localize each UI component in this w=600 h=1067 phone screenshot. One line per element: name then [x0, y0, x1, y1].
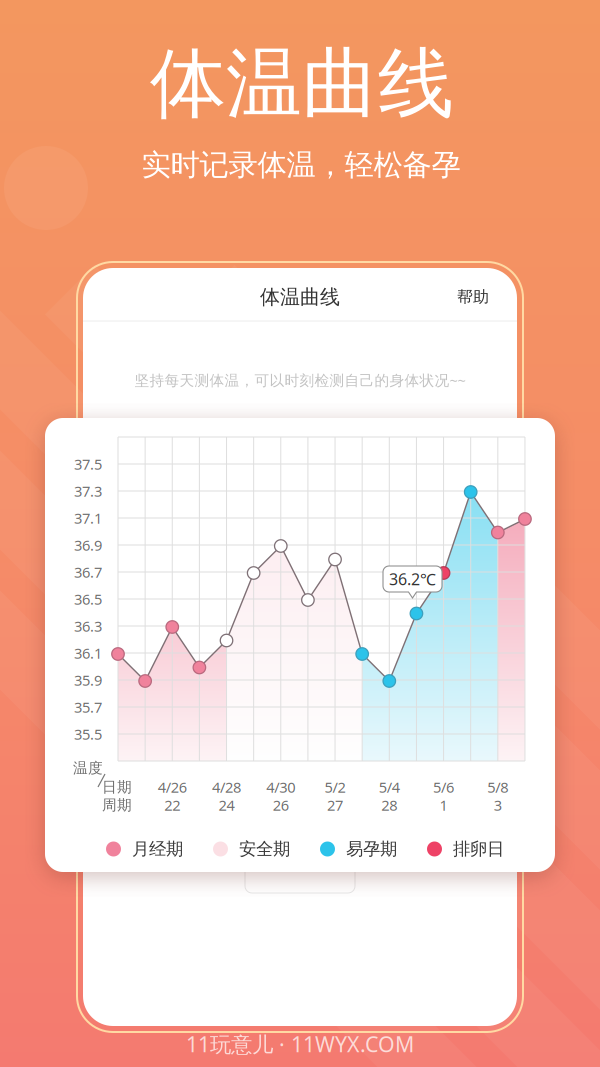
staticText: 37.1 — [74, 508, 102, 528]
staticText: 周期 — [102, 796, 132, 814]
staticText: 26 — [273, 795, 289, 815]
staticText: 22 — [164, 795, 180, 815]
staticText: 5/6 — [433, 777, 454, 797]
staticText: 温度 — [73, 759, 103, 777]
staticText: 排卵日 — [453, 838, 504, 860]
staticText: 实时记录体温，轻松备孕 — [141, 147, 460, 183]
staticText: 24 — [218, 795, 234, 815]
staticText: 5/4 — [379, 777, 400, 797]
staticText: 11玩意儿 · 11WYX.COM — [186, 1030, 414, 1058]
staticText: 体温曲线 — [260, 285, 340, 309]
button[interactable]: 安全期 — [213, 838, 293, 860]
staticText: 37.3 — [74, 481, 102, 501]
staticText: 易孕期 — [346, 838, 397, 860]
staticText: 35.5 — [74, 724, 102, 744]
staticText: 36.9 — [74, 535, 102, 555]
staticText: 帮助 — [457, 287, 489, 307]
button[interactable] — [245, 859, 355, 893]
staticText: 安全期 — [239, 838, 290, 860]
staticText: 4/26 — [158, 777, 187, 797]
staticText: 27 — [327, 795, 343, 815]
staticText: 坚持每天测体温，可以时刻检测自己的身体状况~~ — [134, 370, 465, 390]
staticText: 5/8 — [487, 777, 508, 797]
staticText: 36.3 — [74, 616, 102, 636]
button[interactable]: 易孕期 — [320, 838, 400, 860]
staticText: 35.9 — [74, 670, 102, 690]
button[interactable]: 帮助 — [445, 277, 501, 317]
button[interactable]: 月经期 — [106, 838, 186, 860]
staticText: 3 — [494, 795, 502, 815]
staticText: 36.5 — [74, 589, 102, 609]
button[interactable]: 排卵日 — [427, 838, 507, 860]
staticText: 36.1 — [74, 643, 102, 663]
staticText: 4/30 — [266, 777, 295, 797]
staticText: 1 — [440, 795, 448, 815]
staticText: 36.7 — [74, 562, 102, 582]
staticText: 37.5 — [74, 454, 102, 474]
staticText: 月经期 — [132, 838, 183, 860]
staticText: 28 — [381, 795, 397, 815]
staticText: 36.2℃ — [389, 568, 436, 590]
staticText: 体温曲线 — [150, 37, 454, 131]
staticText: 5/2 — [324, 777, 345, 797]
staticText: 4/28 — [212, 777, 241, 797]
staticText: 日期 — [102, 778, 132, 796]
staticText: 35.7 — [74, 697, 102, 717]
